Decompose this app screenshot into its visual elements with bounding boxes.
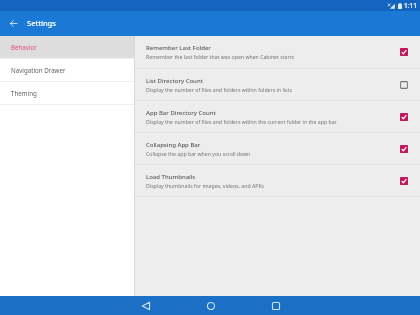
button[interactable]: Recents [266,296,285,315]
button[interactable]: Back [6,16,21,31]
staticText: App Bar Directory Count [146,109,216,117]
staticText: Remember the last folder that was open w… [146,53,295,60]
staticText: Remember Last Folder [146,44,211,52]
staticText: Load Thumbnails [146,173,196,181]
staticText: Navigation Drawer [11,66,66,74]
button[interactable]: Load Thumbnails [135,165,420,196]
staticText: Collapse the app bar when you scroll dow… [146,150,251,157]
staticText: Display the number of files and folders … [146,86,292,93]
button[interactable]: Collapsing App Bar [135,133,420,164]
staticText: Display the number of files and folders … [146,118,337,125]
staticText: List Directory Count [146,77,203,85]
button[interactable]: Back [136,296,155,315]
button[interactable]: Behavior [0,36,134,58]
button[interactable]: Navigation Drawer [0,59,134,81]
staticText: Behavior [11,43,37,51]
staticText: Settings [27,18,56,28]
button[interactable]: Remember Last Folder [135,36,420,68]
staticText: Collapsing App Bar [146,141,201,149]
staticText: 1:11 [404,1,417,10]
staticText: Theming [11,89,37,97]
button[interactable]: Theming [0,82,134,104]
button[interactable]: List Directory Count [135,69,420,100]
button[interactable]: Home [201,296,220,315]
button[interactable]: App Bar Directory Count [135,101,420,132]
staticText: Display thumbnails for images, videos, a… [146,182,265,189]
